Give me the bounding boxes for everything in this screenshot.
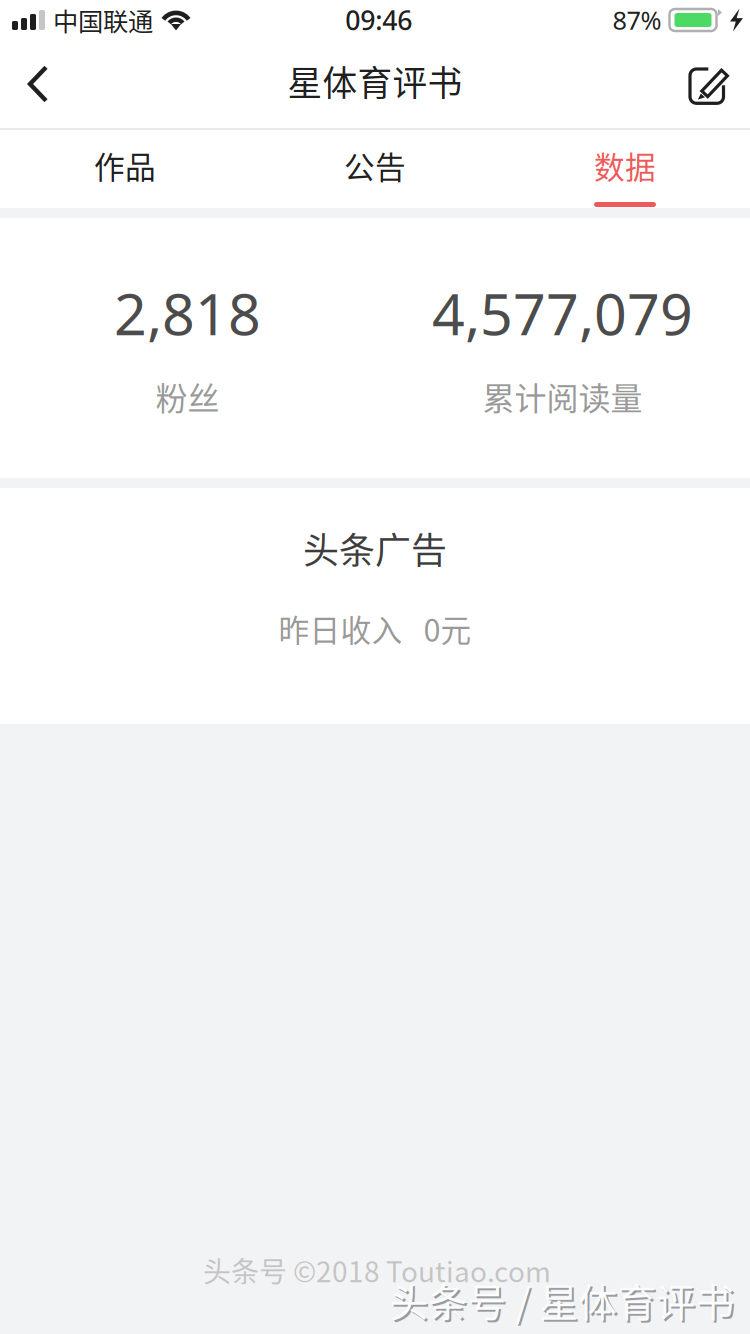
staticText: 粉丝 xyxy=(155,373,219,419)
staticText: 头条号 ©2018 Toutiao.com xyxy=(203,1250,551,1290)
staticText: 4,577,079 xyxy=(432,275,693,351)
staticText: 2,818 xyxy=(114,275,261,351)
staticText: 头条广告 xyxy=(303,522,447,574)
button[interactable]: Compose xyxy=(668,40,750,128)
button[interactable]: 数据 xyxy=(500,130,750,208)
button[interactable]: Back xyxy=(0,40,76,128)
staticText: 公告 xyxy=(344,143,406,188)
button[interactable]: 公告 xyxy=(250,130,500,208)
staticText: 09:46 xyxy=(345,2,412,38)
staticText: 昨日收入 0元 xyxy=(278,606,471,650)
staticText: 作品 xyxy=(94,143,156,188)
staticText: 数据 xyxy=(594,143,656,188)
staticText: 累计阅读量 xyxy=(482,373,642,419)
button[interactable]: 作品 xyxy=(0,130,250,208)
staticText: 87% xyxy=(612,3,661,37)
staticText: 星体育评书 xyxy=(287,56,462,106)
staticText: 头条号 / 星体育评书 xyxy=(391,1274,736,1330)
staticText: 头条号 / 星体育评书 xyxy=(389,1272,734,1328)
staticText: 中国联通 xyxy=(53,2,153,38)
